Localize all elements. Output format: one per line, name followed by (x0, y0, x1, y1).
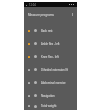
button[interactable]: Abdominal exercise (24, 76, 77, 89)
button[interactable]: Total weight (24, 102, 77, 110)
button[interactable]: Back rest (24, 24, 77, 37)
button[interactable]: Knee flex - left (24, 50, 77, 63)
staticText: Navigation (41, 94, 55, 98)
staticText: Ankle flex - left (41, 42, 60, 46)
staticText: Abdominal exercise (41, 81, 66, 85)
staticText: 12:04 (29, 3, 36, 7)
button[interactable]: Ankle flex - left (24, 37, 77, 50)
staticText: Knee flex - left (41, 55, 59, 59)
staticText: Dihedral extension lft (41, 68, 69, 72)
staticText: Measure programs (28, 13, 54, 17)
button[interactable]: More options (70, 12, 75, 17)
staticText: Total weight (41, 104, 57, 108)
button[interactable]: Dihedral extension lft (24, 63, 77, 76)
button[interactable]: Navigation (24, 89, 77, 102)
staticText: Back rest (41, 29, 53, 33)
